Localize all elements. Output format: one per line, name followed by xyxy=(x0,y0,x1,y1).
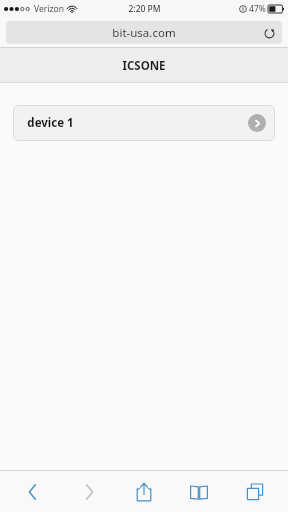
button[interactable]: bit-usa.com xyxy=(6,21,282,44)
button[interactable]: Tabs xyxy=(233,471,277,512)
staticText: ICSONE xyxy=(122,58,166,74)
staticText: 2:20 PM xyxy=(128,3,161,15)
staticText: 47% xyxy=(249,3,266,15)
staticText: Verizon xyxy=(34,3,64,15)
button[interactable]: Back xyxy=(11,471,55,512)
button[interactable]: Forward xyxy=(67,471,111,512)
staticText: device 1 xyxy=(27,115,74,131)
button[interactable]: Bookmarks xyxy=(177,471,221,512)
button[interactable]: Reload xyxy=(260,24,278,42)
button[interactable]: device 1 xyxy=(13,105,275,141)
staticText: bit-usa.com xyxy=(112,25,176,41)
button[interactable]: Share xyxy=(122,471,166,512)
